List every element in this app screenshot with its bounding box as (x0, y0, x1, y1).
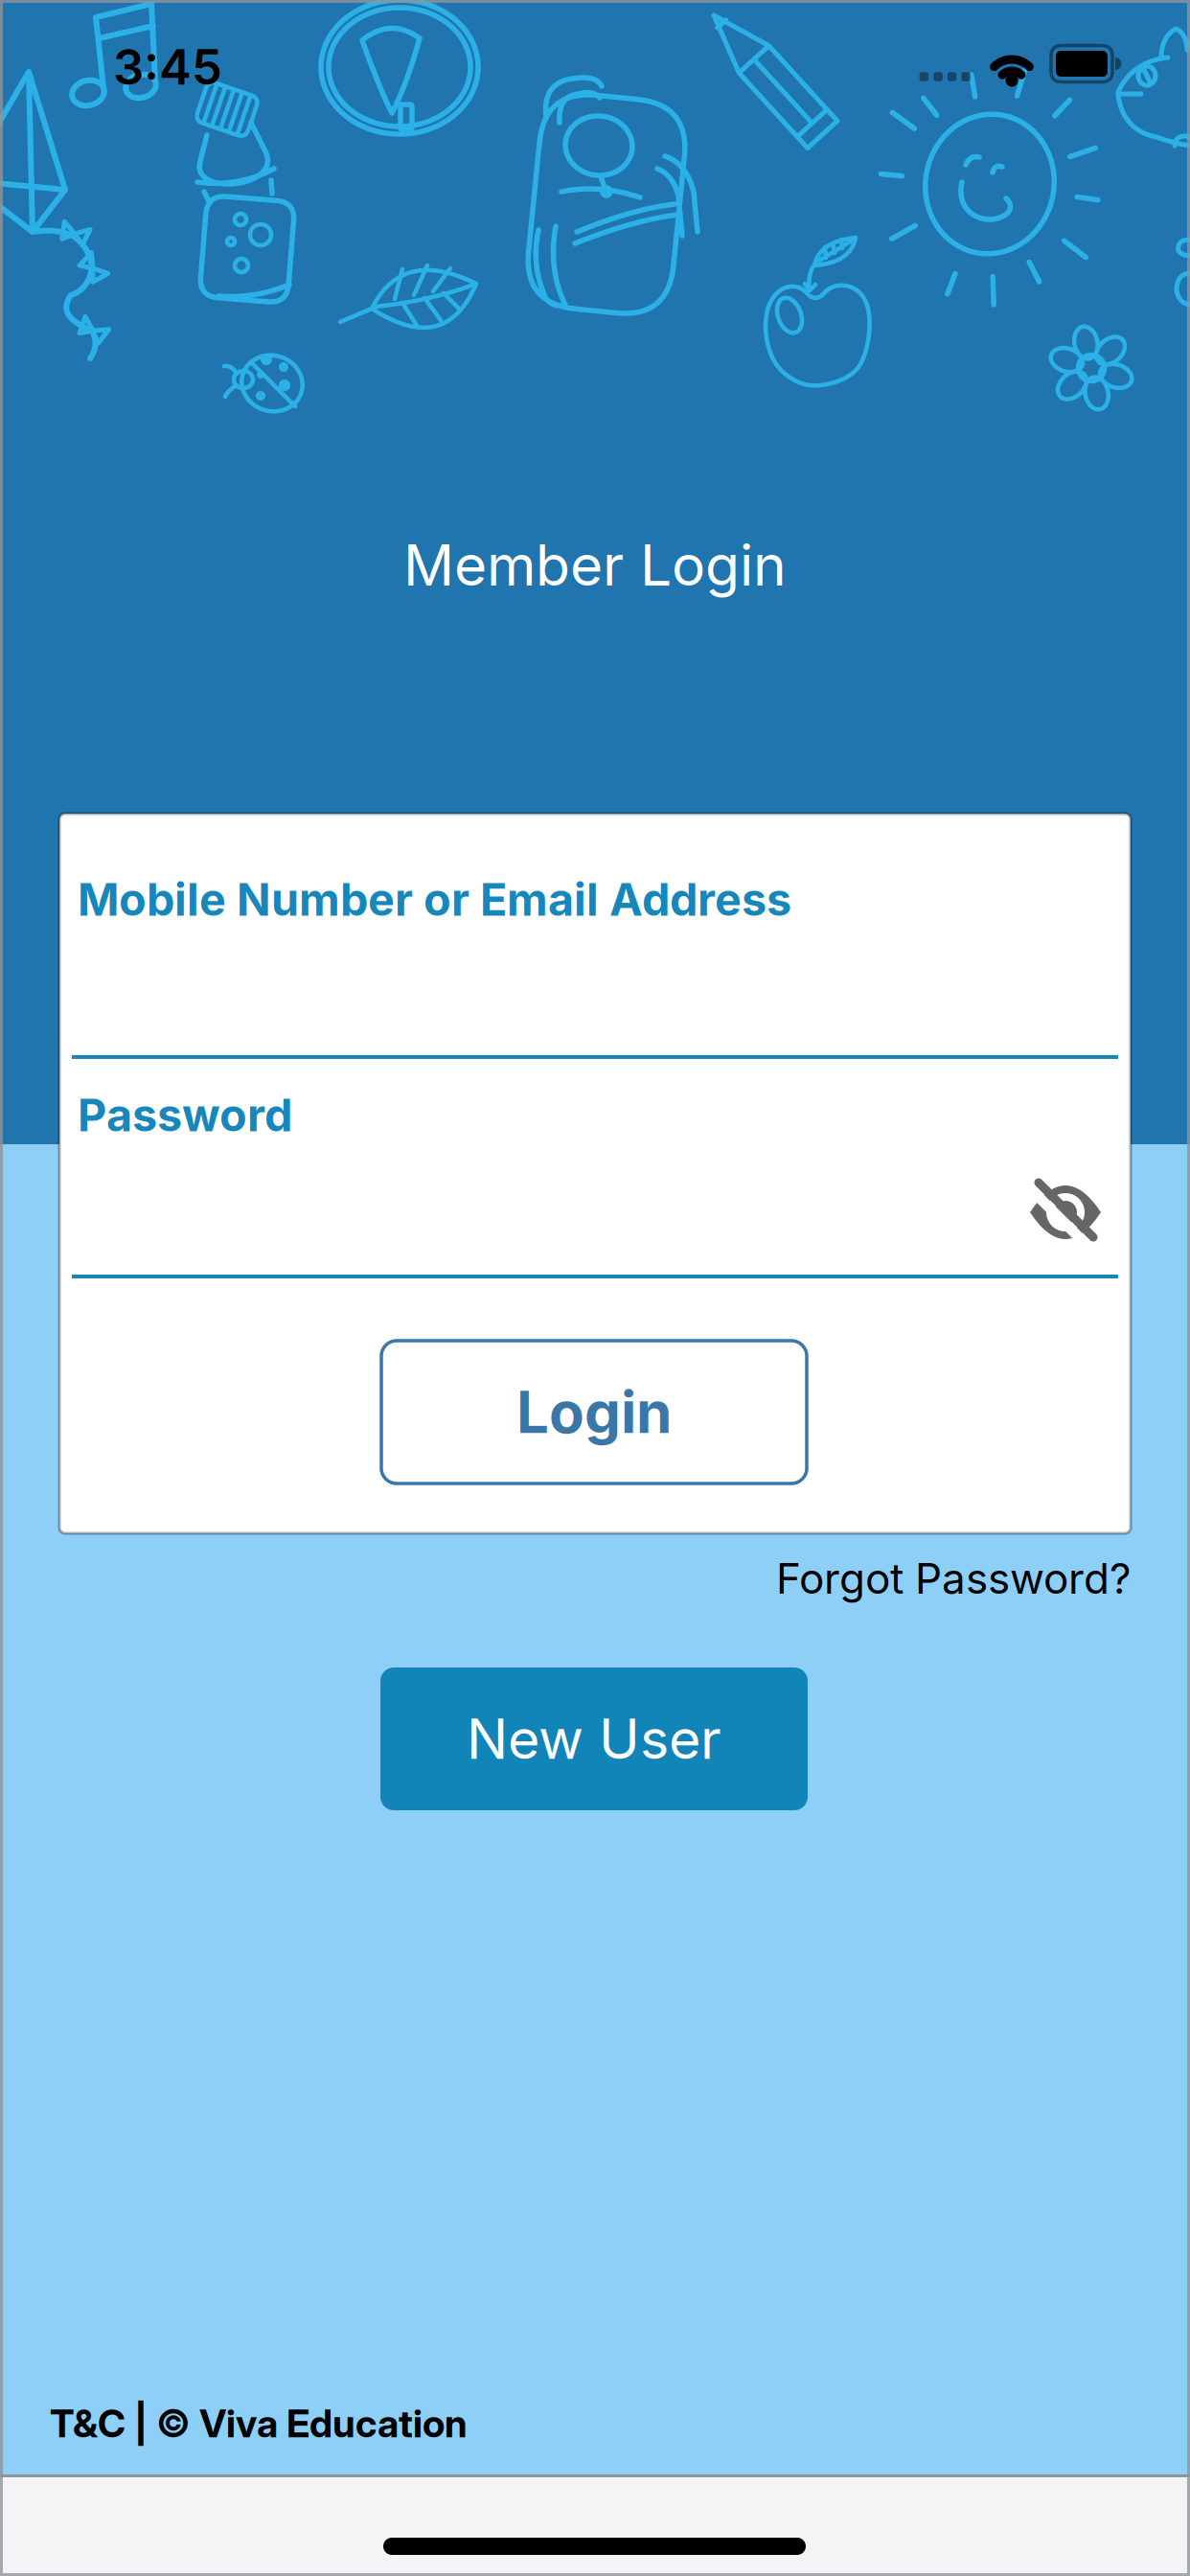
button[interactable]: T&C | © Viva Education (50, 2401, 468, 2446)
staticText: Password (78, 1089, 292, 1141)
staticText: T&C | © Viva Education (50, 2401, 468, 2446)
staticText: Member Login (403, 532, 787, 598)
staticText: Mobile Number or Email Address (78, 873, 791, 926)
staticText: New User (467, 1707, 721, 1771)
button[interactable]: Forgot Password? (776, 1553, 1131, 1603)
staticText: 3:45 (113, 38, 222, 96)
button[interactable]: New User (380, 1667, 808, 1810)
staticText: Login (516, 1378, 672, 1446)
staticText: Forgot Password? (776, 1553, 1131, 1603)
button[interactable]: Show password (1022, 1169, 1109, 1255)
button[interactable]: Login (381, 1341, 807, 1483)
